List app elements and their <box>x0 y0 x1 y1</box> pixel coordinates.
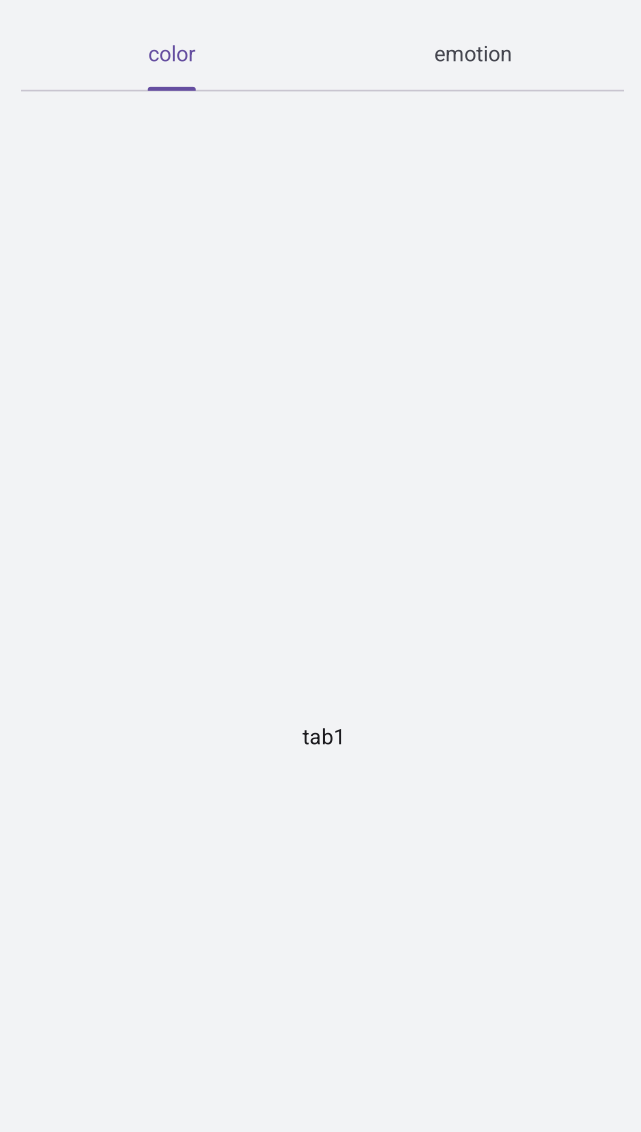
button[interactable]: color <box>21 0 322 91</box>
button[interactable]: emotion <box>322 0 624 91</box>
staticText: tab1 <box>302 724 345 749</box>
staticText: emotion <box>434 41 512 66</box>
staticText: color <box>148 41 195 66</box>
